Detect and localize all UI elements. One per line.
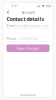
staticText: 9:41 <box>11 4 18 8</box>
button[interactable]: Email <box>6 24 50 28</box>
button[interactable]: Back <box>6 9 11 16</box>
staticText: jane@example.com <box>16 23 48 28</box>
button[interactable]: Save changes <box>6 44 50 52</box>
staticText: Contact details <box>6 15 44 23</box>
staticText: Account <box>21 10 34 15</box>
staticText: +1 555 0134 <box>17 36 37 41</box>
staticText: Save changes <box>16 46 39 51</box>
staticText: Phone <box>6 36 16 41</box>
staticText: Email <box>6 23 15 28</box>
button[interactable]: Phone <box>6 37 50 41</box>
